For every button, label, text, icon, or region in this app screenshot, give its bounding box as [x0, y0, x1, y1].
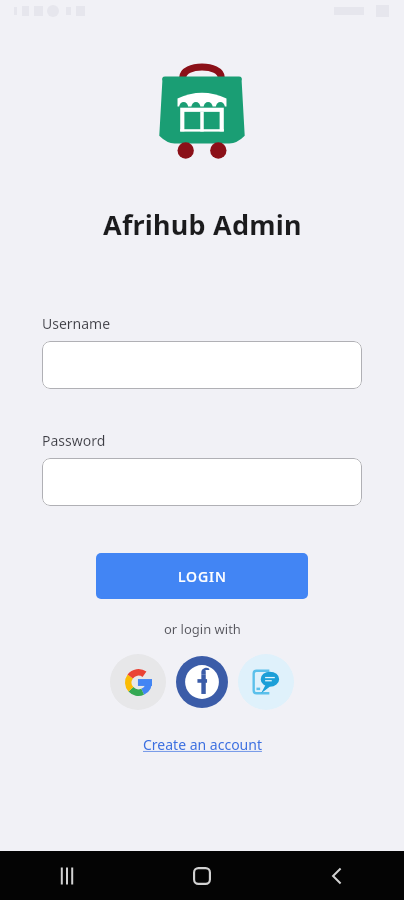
staticText: Create an account	[143, 735, 262, 754]
button[interactable]: Sign in with SMS	[238, 654, 294, 710]
button[interactable]: Username	[42, 341, 362, 389]
staticText: LOGIN	[178, 567, 227, 586]
button[interactable]: Create an account	[137, 732, 268, 757]
button[interactable]: Recent apps	[43, 852, 91, 900]
button[interactable]: Password	[42, 458, 362, 506]
staticText: Password	[42, 431, 106, 450]
staticText: Username	[42, 314, 111, 333]
button[interactable]: Sign in with Facebook	[174, 654, 230, 710]
staticText: or login with	[164, 620, 241, 638]
button[interactable]: Sign in with Google	[110, 654, 166, 710]
other: Afrihub logo	[154, 62, 250, 162]
staticText: Afrihub Admin	[103, 206, 302, 243]
button[interactable]: Home	[178, 852, 226, 900]
button[interactable]: LOGIN	[96, 553, 308, 599]
button[interactable]: Back	[313, 852, 361, 900]
